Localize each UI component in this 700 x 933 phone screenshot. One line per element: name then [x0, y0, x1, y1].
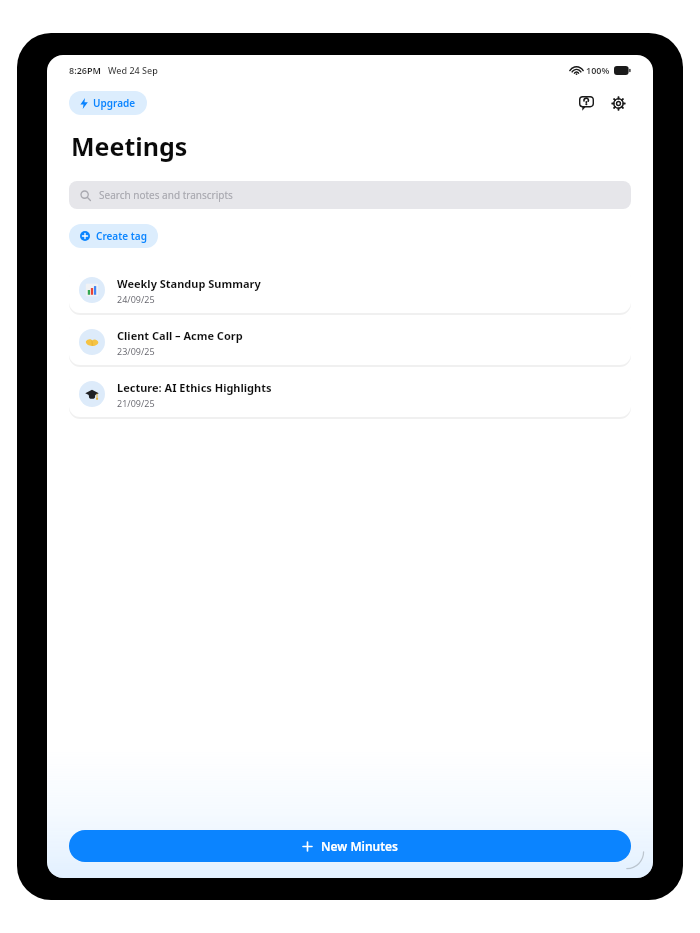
staticText: Wed 24 Sep	[108, 64, 158, 76]
staticText: Search notes and transcripts	[99, 188, 233, 202]
button[interactable]: Help	[573, 90, 599, 116]
staticText: PM	[87, 64, 101, 76]
staticText: Upgrade	[93, 96, 136, 110]
staticText: Create tag	[96, 229, 147, 243]
staticText: 100%	[586, 64, 610, 76]
staticText: Lecture: AI Ethics Highlights	[117, 380, 272, 395]
staticText: Weekly Standup Summary	[117, 276, 261, 291]
staticText: 21/09/25	[117, 397, 155, 409]
staticText: Client Call – Acme Corp	[117, 328, 243, 343]
button[interactable]: Upgrade	[69, 91, 147, 115]
button[interactable]: Search notes and transcripts	[69, 181, 631, 209]
button[interactable]: New Minutes	[69, 830, 631, 862]
staticText: New Minutes	[321, 838, 399, 854]
staticText: Meetings	[71, 129, 188, 163]
button[interactable]: Settings	[605, 90, 631, 116]
button[interactable]: Client Call – Acme Corp	[69, 319, 631, 365]
staticText: 24/09/25	[117, 293, 155, 305]
staticText: 23/09/25	[117, 345, 155, 357]
button[interactable]: Create tag	[69, 224, 158, 248]
button[interactable]: Weekly Standup Summary	[69, 267, 631, 313]
button[interactable]: Lecture: AI Ethics Highlights	[69, 371, 631, 417]
staticText: 8:26	[69, 64, 87, 76]
